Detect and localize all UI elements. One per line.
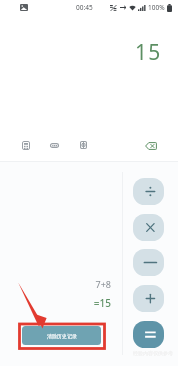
button[interactable]: Subtract [133, 249, 164, 276]
button[interactable]: Unit converter [80, 141, 87, 149]
staticText: 清除历史记录 [47, 333, 77, 339]
button[interactable]: Equals [133, 321, 164, 348]
staticText: 7+8 [0, 278, 111, 290]
button[interactable]: Keypad [50, 143, 59, 148]
button[interactable]: 清除历史记录 [22, 326, 101, 345]
button[interactable]: Backspace [145, 142, 157, 150]
button[interactable]: History [22, 141, 30, 150]
staticText: 00:45 [76, 3, 93, 12]
staticText: =15 [0, 296, 111, 310]
button[interactable]: Add [133, 285, 164, 312]
button[interactable]: Divide [133, 178, 164, 205]
staticText: 100% [148, 3, 165, 12]
staticText: 15 [135, 38, 162, 67]
staticText: 经验内容仅供参考 [133, 350, 173, 356]
button[interactable]: Multiply [133, 214, 164, 241]
button[interactable]: Screenshot [20, 4, 28, 11]
